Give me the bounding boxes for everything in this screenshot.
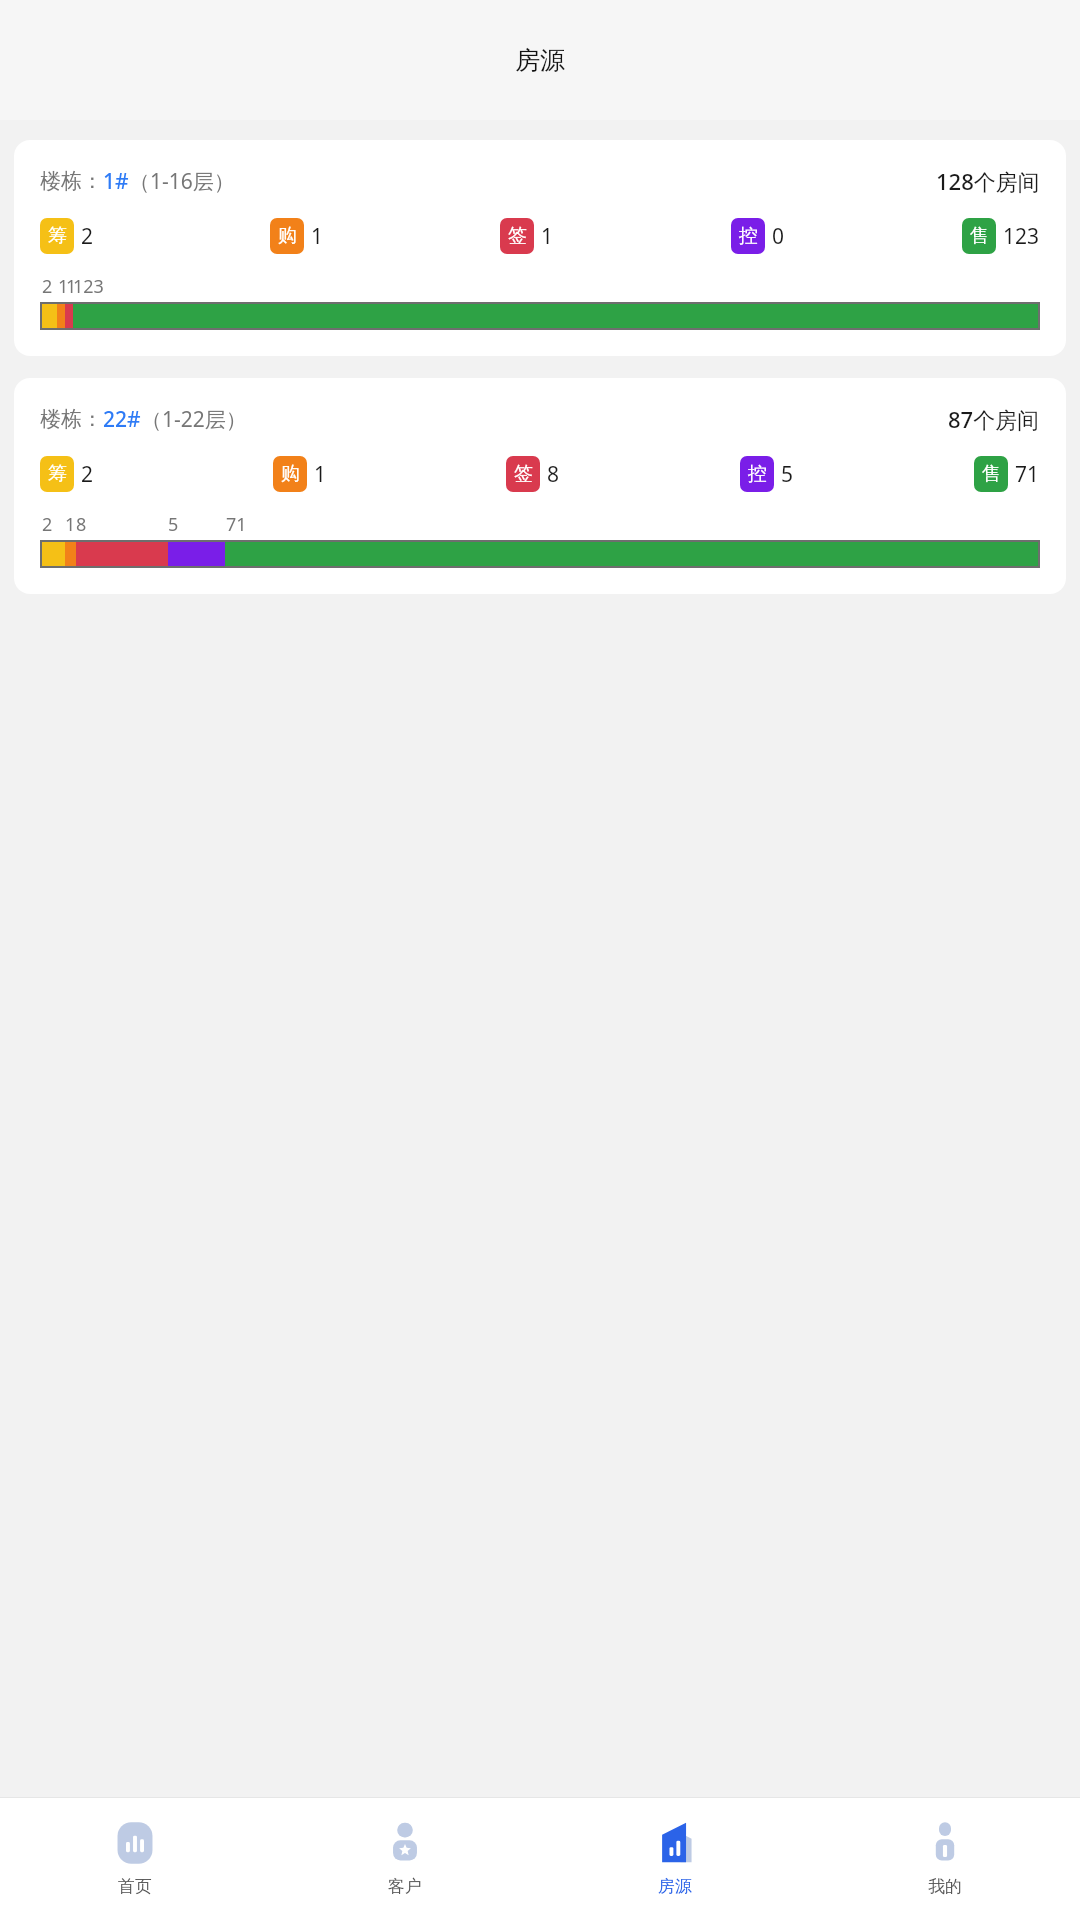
staticText: 5 <box>781 460 794 489</box>
staticText: 1 <box>541 222 554 251</box>
staticText: 签 <box>514 462 533 486</box>
staticText: 房源 <box>515 45 565 76</box>
staticText: 房源 <box>658 1876 692 1897</box>
staticText: 售 <box>970 224 989 248</box>
button[interactable]: 楼栋： <box>14 378 1066 594</box>
staticText: 2 <box>42 274 53 299</box>
staticText: 购 <box>281 462 300 486</box>
staticText: 5 <box>168 512 179 537</box>
staticText: 筹 <box>48 224 67 248</box>
button[interactable]: 楼栋： <box>14 140 1066 356</box>
staticText: （1-16层） <box>129 167 235 196</box>
staticText: 128个房间 <box>936 166 1040 196</box>
staticText: 楼栋： <box>40 406 103 432</box>
staticText: 71 <box>226 512 247 537</box>
staticText: 购 <box>278 224 297 248</box>
staticText: 1# <box>103 167 129 196</box>
button[interactable]: 房源 <box>540 1798 810 1920</box>
staticText: 售 <box>982 462 1001 486</box>
staticText: 123 <box>73 274 104 299</box>
staticText: 2 <box>81 460 94 489</box>
staticText: 2 <box>81 222 94 251</box>
staticText: 22# <box>103 405 141 434</box>
staticText: 客户 <box>388 1876 422 1897</box>
staticText: 我的 <box>928 1876 962 1897</box>
staticText: 1 <box>314 460 327 489</box>
staticText: 控 <box>748 462 767 486</box>
button[interactable]: 客户 <box>270 1798 540 1920</box>
staticText: 8 <box>547 460 560 489</box>
staticText: 控 <box>739 224 758 248</box>
staticText: 1 <box>65 512 76 537</box>
staticText: 楼栋： <box>40 168 103 194</box>
staticText: 8 <box>76 512 87 537</box>
staticText: 1 <box>58 274 69 299</box>
staticText: 1 <box>311 222 324 251</box>
staticText: 筹 <box>48 462 67 486</box>
staticText: 123 <box>1003 222 1040 251</box>
staticText: 首页 <box>118 1876 152 1897</box>
staticText: 签 <box>508 224 527 248</box>
staticText: 1 <box>66 274 77 299</box>
button[interactable]: 我的 <box>810 1798 1080 1920</box>
staticText: 87个房间 <box>948 404 1040 434</box>
button[interactable]: 首页 <box>0 1798 270 1920</box>
staticText: 0 <box>772 222 785 251</box>
staticText: 71 <box>1015 460 1040 489</box>
staticText: 2 <box>42 512 53 537</box>
staticText: （1-22层） <box>141 405 247 434</box>
